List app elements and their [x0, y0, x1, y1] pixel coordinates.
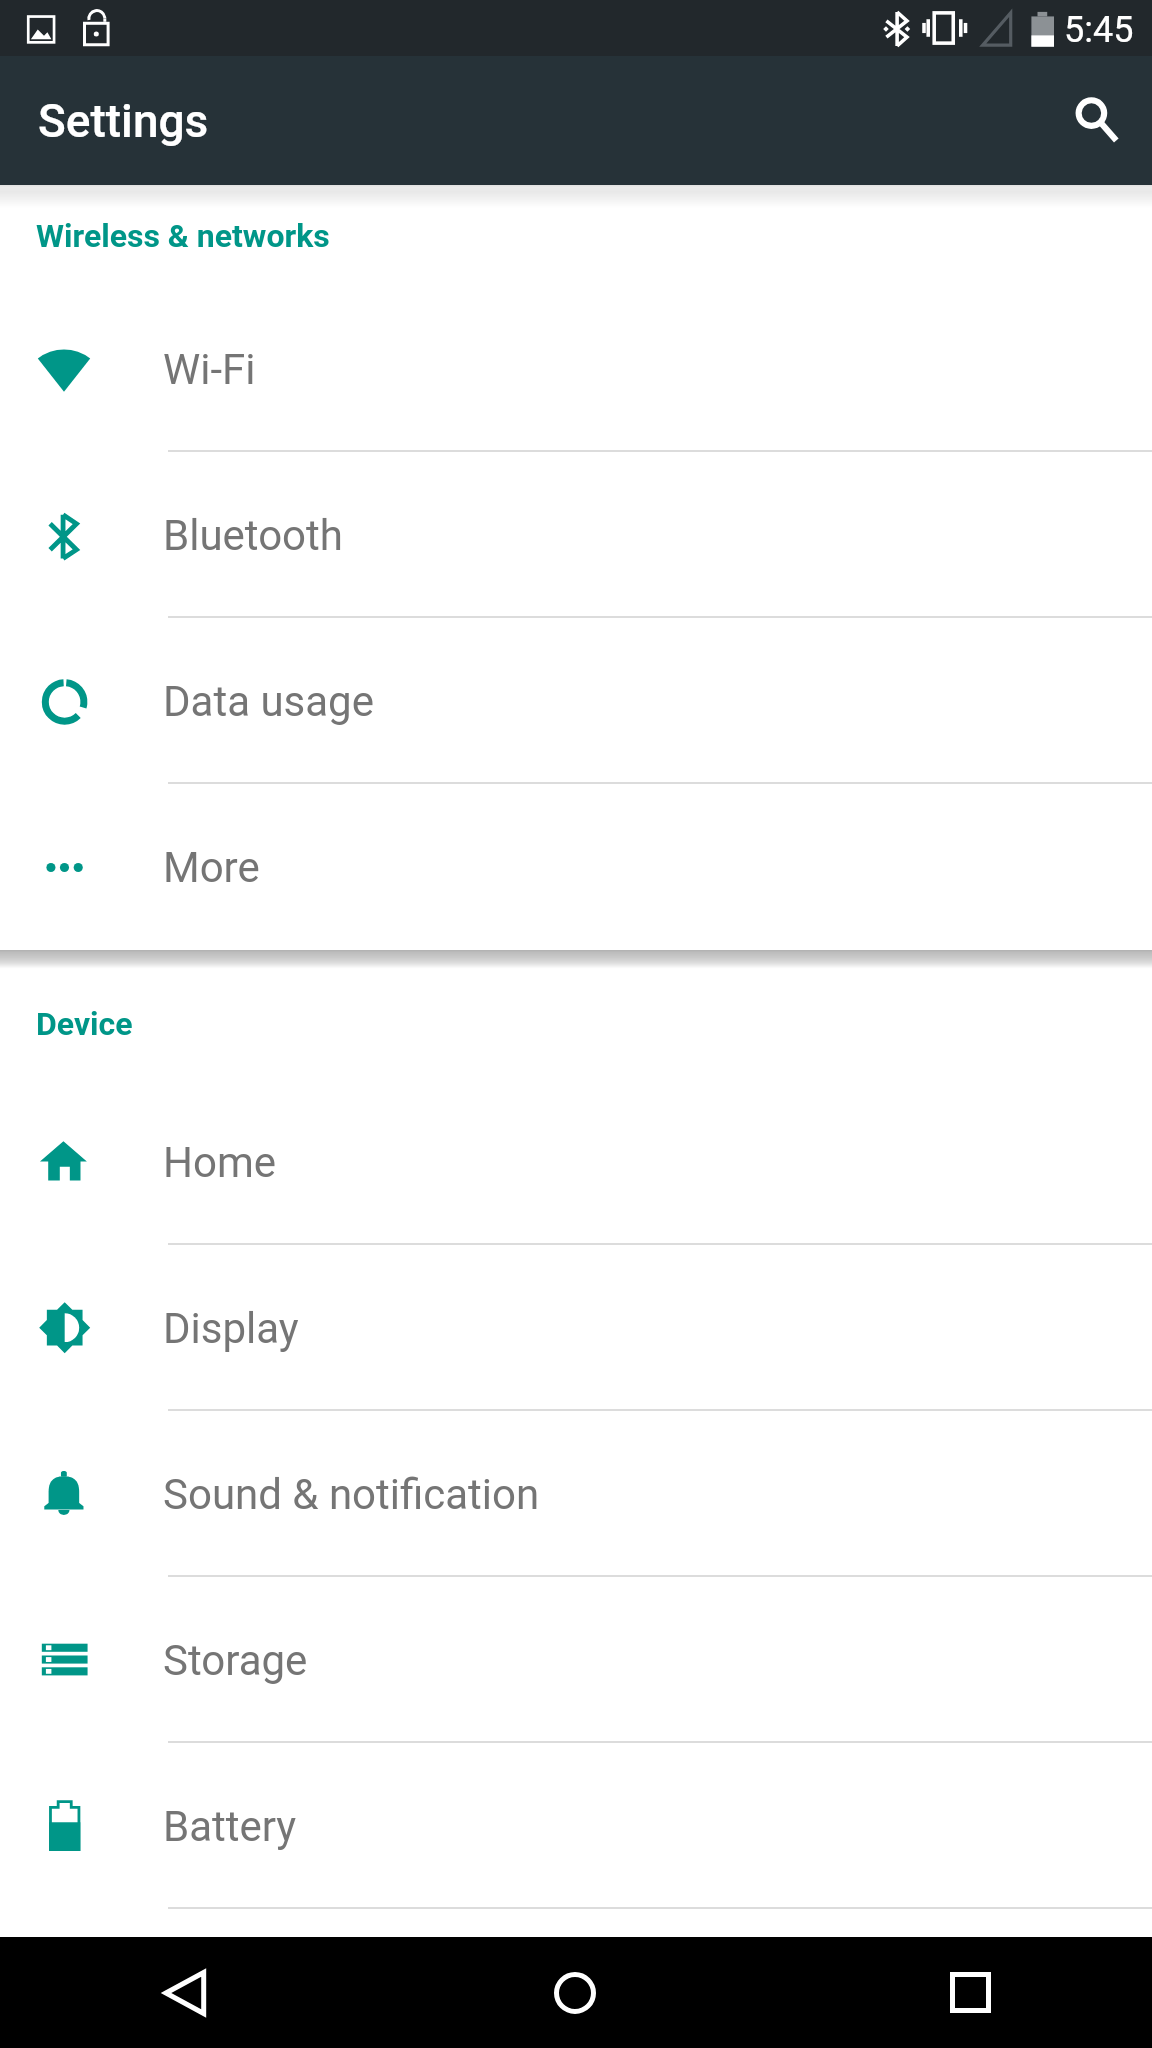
staticText: Wi-Fi	[163, 345, 256, 394]
staticText: Bluetooth	[163, 511, 343, 560]
button[interactable]: Storage	[0, 1577, 1152, 1743]
staticText: Home	[163, 1138, 277, 1187]
button[interactable]: Battery	[0, 1743, 1152, 1909]
staticText: Display	[163, 1304, 299, 1353]
staticText: Settings	[38, 94, 209, 148]
button[interactable]: Home	[0, 1079, 1152, 1245]
button[interactable]: Display	[0, 1245, 1152, 1411]
staticText: Data usage	[163, 677, 374, 726]
staticText: More	[163, 843, 260, 892]
button[interactable]: Sound & notification	[0, 1411, 1152, 1577]
staticText: Battery	[163, 1802, 297, 1851]
button[interactable]: More	[0, 784, 1152, 950]
button[interactable]: Back	[131, 1937, 242, 2048]
button[interactable]: Data usage	[0, 618, 1152, 784]
button[interactable]: Bluetooth	[0, 452, 1152, 618]
button[interactable]: Search	[1046, 70, 1146, 170]
staticText: Storage	[163, 1636, 308, 1685]
staticText: Sound & notification	[163, 1470, 540, 1519]
staticText: 5:45	[1064, 9, 1134, 51]
button[interactable]: Home	[519, 1937, 630, 2048]
staticText: Wireless & networks	[36, 217, 330, 255]
button[interactable]: Wi-Fi	[0, 286, 1152, 452]
staticText: Device	[36, 1005, 133, 1043]
button[interactable]: Recent apps	[915, 1937, 1026, 2048]
